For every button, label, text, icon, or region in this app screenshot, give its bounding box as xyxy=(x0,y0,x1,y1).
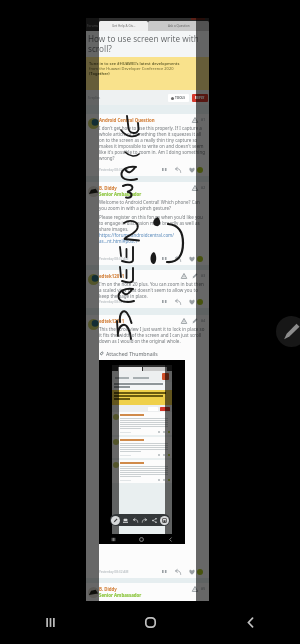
button[interactable]: Reply xyxy=(175,256,181,262)
button[interactable]: Like xyxy=(189,569,195,575)
button[interactable]: Like xyxy=(189,167,195,173)
staticText: Android Central Question xyxy=(99,117,155,123)
button[interactable]: Quote xyxy=(162,300,167,305)
button[interactable]: Pen xyxy=(111,516,120,525)
button[interactable]: Share xyxy=(150,516,159,525)
staticText: This the scroll view I just want it to l… xyxy=(99,326,206,344)
button[interactable]: Ask a Question xyxy=(148,21,209,31)
staticText: Forums xyxy=(87,24,99,28)
staticText: B. Diddy xyxy=(99,586,117,592)
staticText: #1 xyxy=(201,117,206,121)
button[interactable]: Redo xyxy=(140,516,149,525)
button[interactable]: edtek12011 xyxy=(86,270,209,308)
button[interactable]: Like xyxy=(189,256,195,262)
button[interactable]: Likes xyxy=(197,299,203,305)
staticText: #5 xyxy=(201,586,206,590)
staticText: I'm on the note 20 plus. You can zoom in… xyxy=(99,281,206,299)
button[interactable]: Reply xyxy=(175,167,181,173)
staticText: (Together) xyxy=(89,71,110,76)
button[interactable]: Back xyxy=(200,601,300,644)
button[interactable]: Recents xyxy=(0,601,100,644)
staticText: 5 replies xyxy=(88,96,101,100)
button[interactable]: Quote xyxy=(162,570,167,575)
staticText: Please register on this forum when you'd… xyxy=(99,214,206,232)
button[interactable]: edtek12011 xyxy=(86,315,209,578)
button[interactable]: https://forums.androidcentral.com/as...n… xyxy=(99,232,206,244)
button[interactable]: B. Diddy xyxy=(86,583,209,613)
staticText: Welcome to Android Central! Which phone?… xyxy=(99,199,206,211)
staticText: Yesterday 08:32 AM xyxy=(99,257,129,261)
button[interactable]: Quote xyxy=(162,257,167,262)
staticText: I don't get how to use this properly. If… xyxy=(99,125,206,161)
staticText: #4 xyxy=(201,318,206,322)
button[interactable]: Undo xyxy=(131,516,140,525)
staticText: Get Help & Giv… xyxy=(112,24,136,28)
staticText: from the Huawei Developer Conference 202… xyxy=(89,66,174,71)
button[interactable]: Reply xyxy=(175,569,181,575)
staticText: TOOLS xyxy=(175,96,186,100)
staticText: Ask a Question xyxy=(168,24,190,28)
button[interactable]: Likes xyxy=(197,569,203,575)
button[interactable]: Android Central Question xyxy=(86,114,209,176)
button[interactable]: Quote xyxy=(162,168,167,173)
button[interactable]: Likes xyxy=(197,256,203,262)
button[interactable]: REPLY xyxy=(192,94,208,102)
staticText: Tune in to see #HUAWEI's latest developm… xyxy=(89,61,180,66)
staticText: Attached Thumbnails xyxy=(106,350,158,357)
staticText: Senior Ambassador xyxy=(99,191,142,197)
button[interactable]: Get Help & Giv… xyxy=(99,21,148,31)
staticText: #3 xyxy=(201,273,206,277)
button[interactable]: B. Diddy xyxy=(86,182,209,265)
staticText: Yesterday 08:32 AM xyxy=(99,168,129,172)
staticText: Senior Ambassador xyxy=(99,592,142,598)
staticText: edtek12011 xyxy=(99,318,125,324)
button[interactable]: Like xyxy=(189,299,195,305)
button[interactable]: Home xyxy=(100,601,200,644)
button[interactable]: Reply xyxy=(175,299,181,305)
staticText: Yesterday 08:32 AM xyxy=(99,300,129,304)
button[interactable]: Attached screenshot xyxy=(99,360,185,544)
button[interactable]: TOOLS xyxy=(168,94,189,102)
button[interactable]: Eraser xyxy=(121,516,130,525)
staticText: B. Diddy xyxy=(99,185,117,191)
staticText: Yesterday 08:32 AM xyxy=(99,570,129,574)
button[interactable]: Likes xyxy=(197,167,203,173)
button[interactable]: Edit with pen xyxy=(276,316,300,347)
staticText: edtek12011 xyxy=(99,273,125,279)
staticText: REPLY xyxy=(195,96,205,100)
staticText: How to use screen write with scroll? xyxy=(88,33,207,54)
button[interactable]: Save xyxy=(160,516,169,525)
staticText: I will also post a screenshot of the sam… xyxy=(99,600,206,612)
staticText: #2 xyxy=(201,185,206,189)
